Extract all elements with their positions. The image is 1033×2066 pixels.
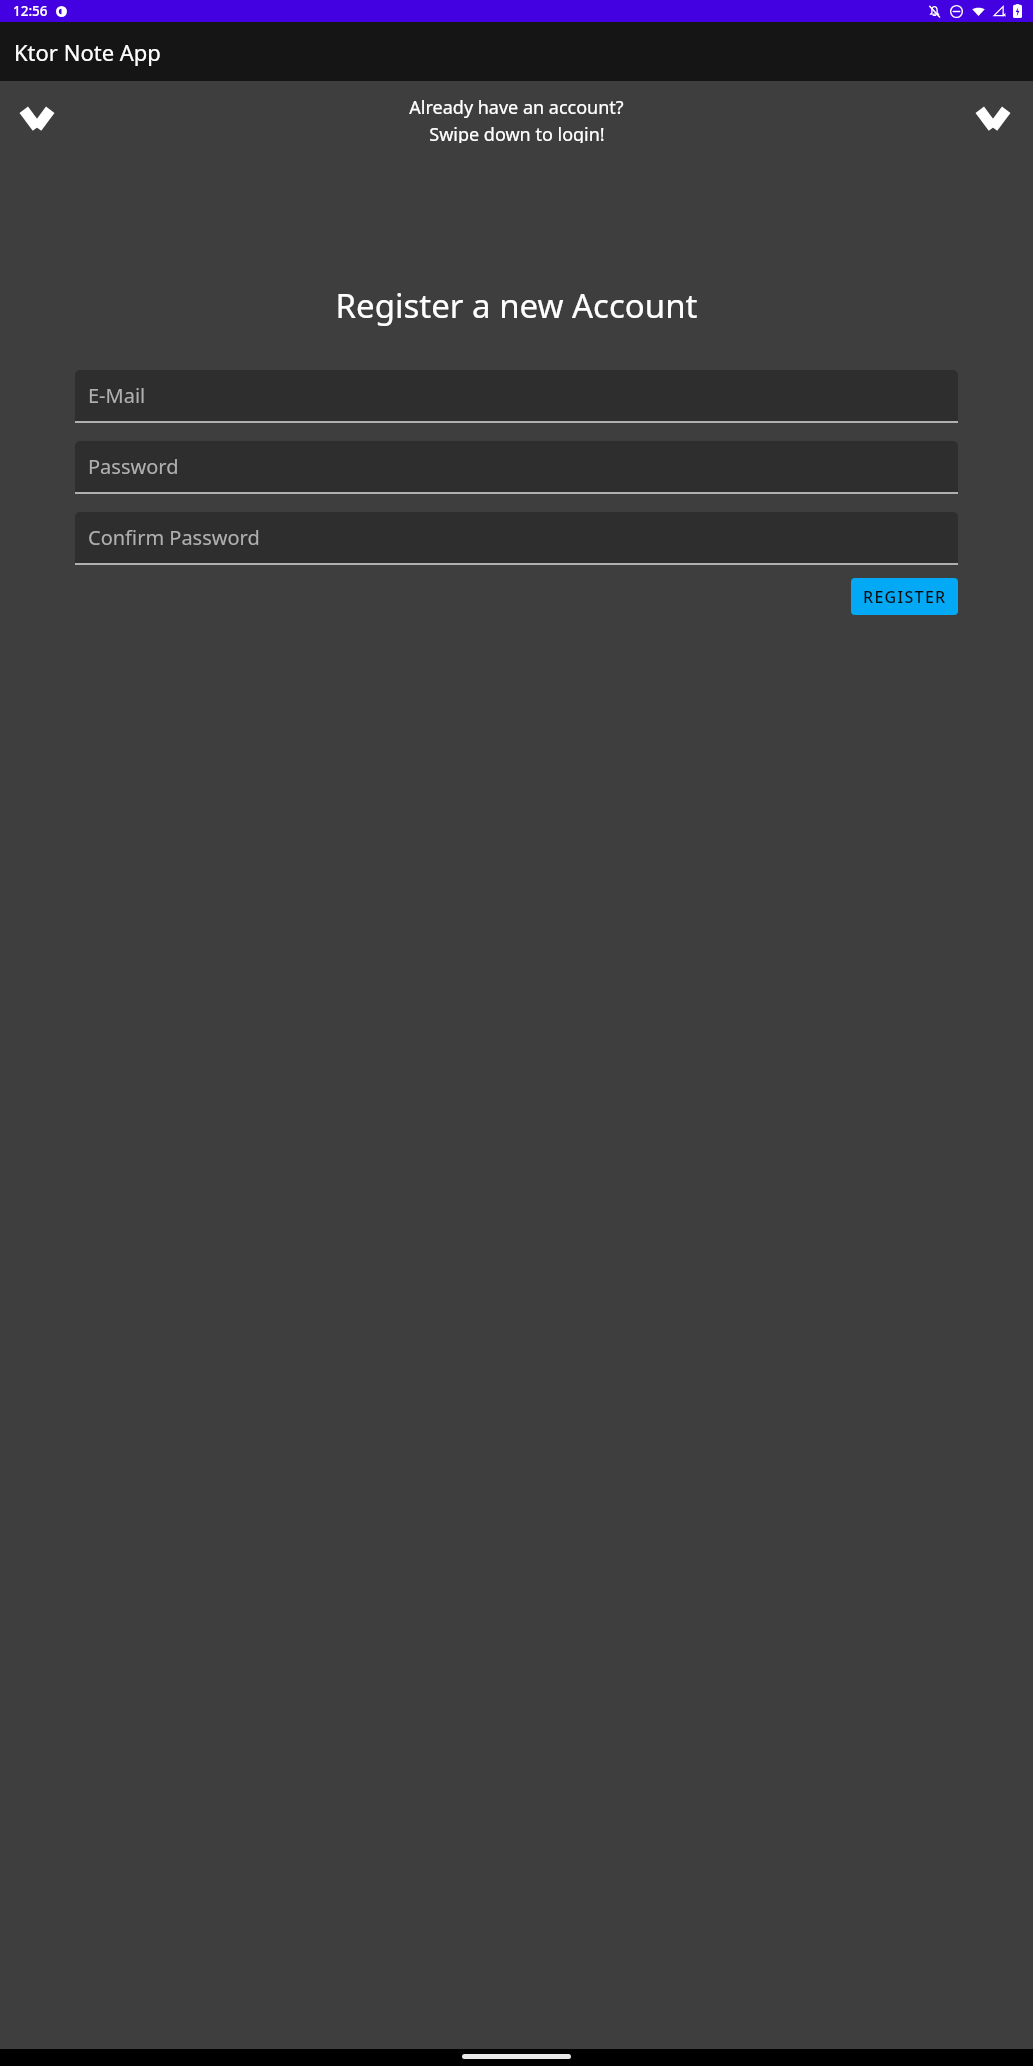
staticText: REGISTER bbox=[863, 586, 947, 608]
staticText: Swipe down to login! bbox=[429, 122, 605, 143]
button[interactable]: Swipe down to login bbox=[19, 107, 55, 130]
button[interactable]: Password bbox=[75, 441, 958, 494]
staticText: Ktor Note App bbox=[14, 37, 161, 67]
staticText: E-Mail bbox=[88, 382, 146, 409]
staticText: Password bbox=[88, 453, 179, 480]
staticText: Confirm Password bbox=[88, 524, 260, 551]
button[interactable]: E-Mail bbox=[75, 370, 958, 423]
button[interactable]: REGISTER bbox=[851, 578, 958, 615]
staticText: 12:56 bbox=[13, 2, 48, 20]
button[interactable]: Confirm Password bbox=[75, 512, 958, 565]
button[interactable]: Swipe down to login bbox=[975, 107, 1011, 130]
staticText: Register a new Account bbox=[0, 283, 1033, 328]
staticText: Already have an account? bbox=[409, 95, 624, 120]
